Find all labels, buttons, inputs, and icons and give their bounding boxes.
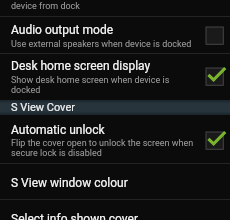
button[interactable] xyxy=(0,200,230,220)
button[interactable]: Audio output mode checkbox xyxy=(200,22,227,47)
button[interactable] xyxy=(0,54,230,100)
staticText: Select info shown cover xyxy=(11,212,197,220)
staticText: Audio output mode xyxy=(11,23,197,37)
button[interactable]: Automatic unlock checkbox xyxy=(200,127,227,152)
staticText: S View window colour xyxy=(11,176,197,190)
button[interactable] xyxy=(0,115,230,163)
button[interactable] xyxy=(0,17,230,53)
staticText: Automatic unlock xyxy=(11,123,197,137)
staticText: Desk home screen display xyxy=(11,59,197,73)
staticText: Show desk home screen when device is doc… xyxy=(11,75,197,95)
staticText: Use external speakers when device is doc… xyxy=(11,39,197,50)
button[interactable] xyxy=(0,0,230,16)
staticText: Flip the cover open to unlock the screen… xyxy=(11,138,197,158)
button[interactable]: Desk home screen display checkbox xyxy=(200,63,227,88)
button[interactable] xyxy=(0,164,230,199)
staticText: S View Cover xyxy=(11,101,75,114)
staticText: device from dock xyxy=(11,1,197,12)
